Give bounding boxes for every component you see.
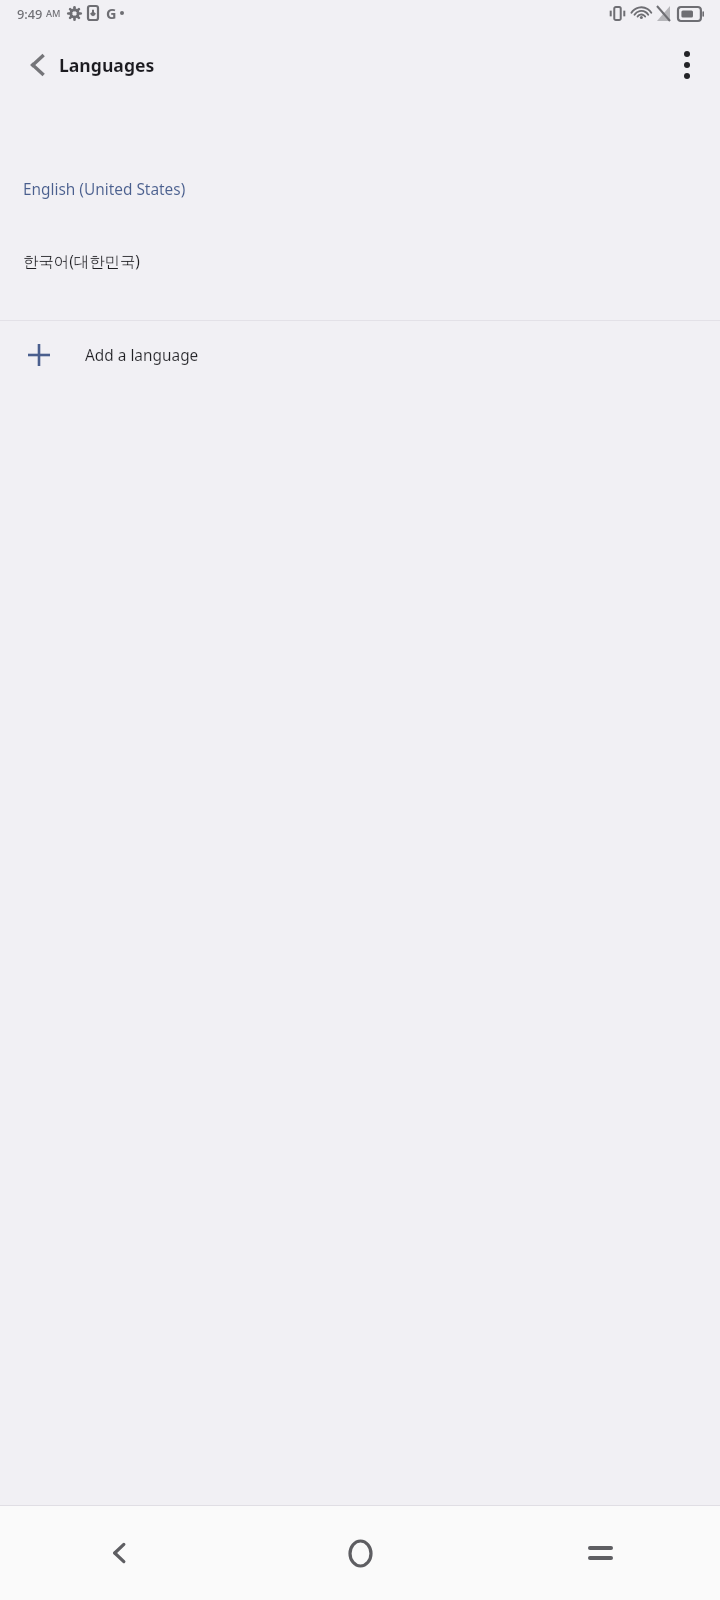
staticText: English (United States) xyxy=(23,179,186,200)
button[interactable]: 한국어(대한민국) xyxy=(0,228,720,294)
button[interactable]: More options xyxy=(663,41,711,89)
button[interactable]: Navigate up xyxy=(14,41,62,89)
button[interactable]: Recent apps xyxy=(480,1506,720,1600)
button[interactable]: Home xyxy=(240,1506,480,1600)
button[interactable]: Add a language xyxy=(0,321,720,389)
button[interactable]: English (United States) xyxy=(0,156,720,222)
staticText: G xyxy=(106,3,117,23)
staticText: Languages xyxy=(59,53,155,77)
staticText: AM xyxy=(46,7,61,20)
staticText: Add a language xyxy=(85,345,199,366)
staticText: 9:49 xyxy=(17,5,43,22)
staticText: 한국어(대한민국) xyxy=(23,251,140,272)
button[interactable]: Back xyxy=(0,1506,240,1600)
